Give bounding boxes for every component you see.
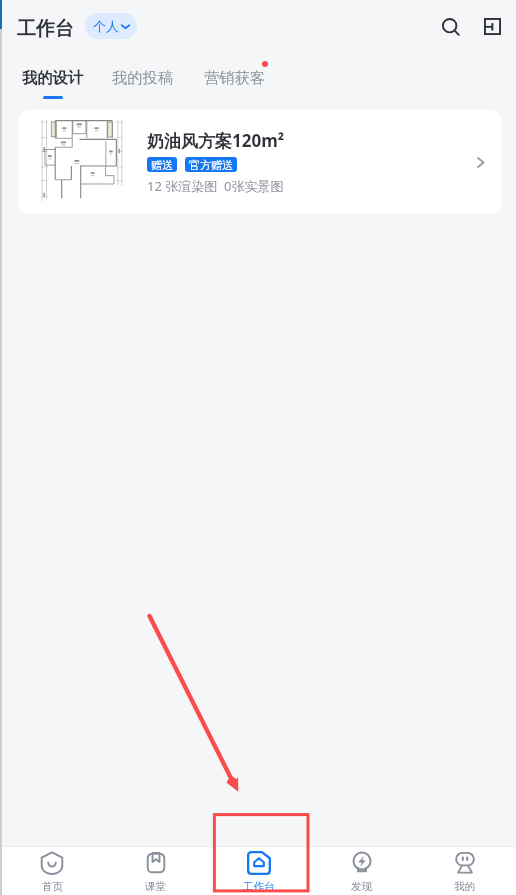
staticText: 官方赠送 (189, 158, 233, 172)
staticText: 工作台 (243, 880, 275, 893)
button[interactable]: 奶油风方案120m² (18, 110, 502, 214)
button[interactable]: 课堂 (104, 847, 207, 895)
staticText: 个人 (93, 18, 119, 34)
staticText: 奶油风方案120m² (147, 129, 285, 152)
staticText: 发现 (351, 880, 372, 893)
button[interactable]: 发现 (310, 847, 413, 895)
button[interactable]: 我的设计 (22, 52, 84, 99)
staticText: 赠送 (151, 158, 173, 172)
staticText: 我的投稿 (112, 68, 174, 87)
staticText: 我的设计 (22, 68, 84, 87)
staticText: 营销获客 (204, 68, 266, 87)
staticText: 工作台 (17, 17, 74, 41)
button[interactable]: 个人 (85, 13, 137, 39)
staticText: 我的 (454, 880, 475, 893)
button[interactable]: 首页 (0, 847, 104, 895)
button[interactable]: Search (432, 8, 468, 44)
staticText: 12 张渲染图 0张实景图 (147, 177, 284, 195)
staticText: 课堂 (145, 880, 166, 893)
button[interactable]: 营销获客 (204, 52, 266, 99)
staticText: 首页 (42, 880, 63, 893)
button[interactable]: 工作台 (207, 847, 310, 895)
button[interactable]: 我的投稿 (112, 52, 174, 99)
button[interactable]: 我的 (413, 847, 516, 895)
button[interactable]: Collapse sidebar (474, 8, 510, 44)
